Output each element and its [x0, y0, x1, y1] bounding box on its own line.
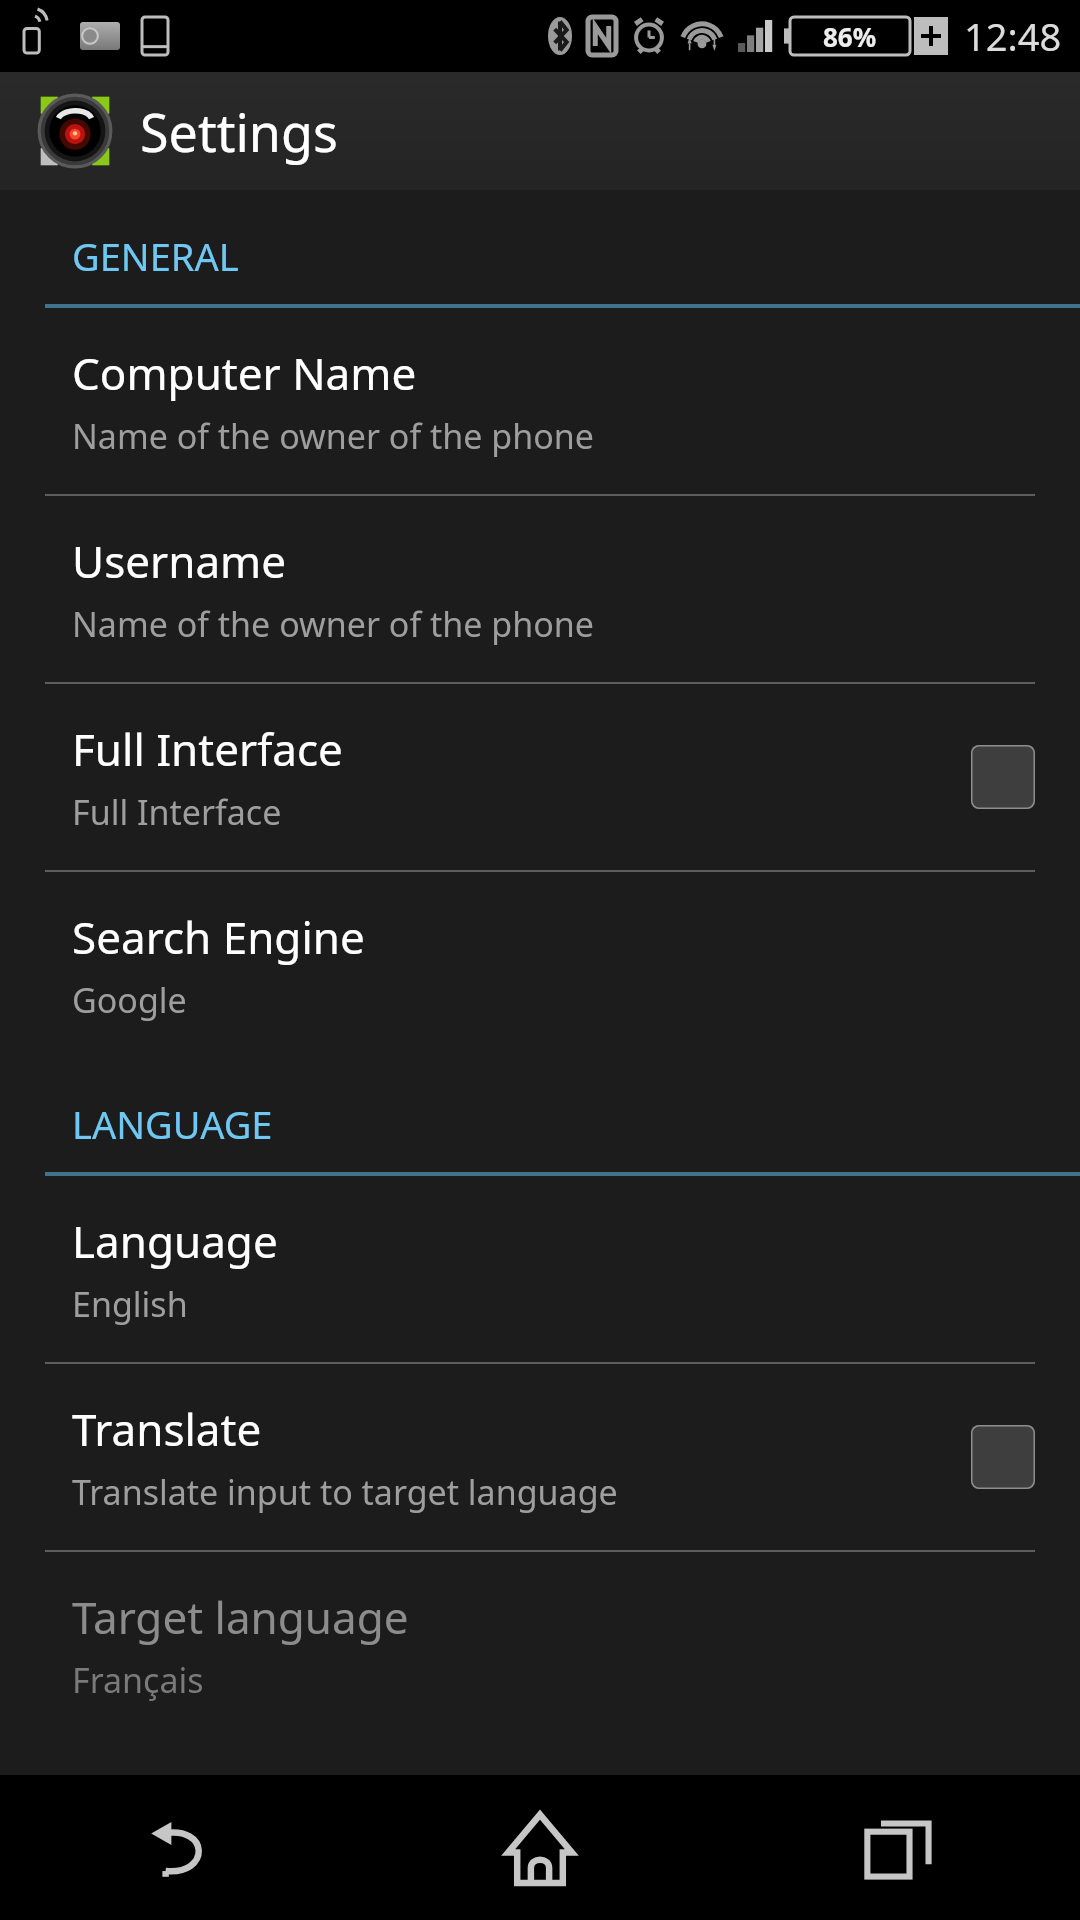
staticText: Language: [72, 1211, 278, 1271]
staticText: 86%: [823, 19, 877, 54]
button[interactable]: Search Engine: [0, 872, 1080, 1058]
button[interactable]: Back: [0, 1775, 360, 1920]
button[interactable]: Language: [0, 1176, 1080, 1364]
staticText: Full Interface: [72, 719, 343, 779]
button[interactable]: Translate: [0, 1364, 1080, 1552]
staticText: Translate: [72, 1399, 262, 1459]
staticText: Full Interface: [72, 789, 282, 835]
staticText: Search Engine: [72, 907, 365, 967]
button[interactable]: Recents: [720, 1775, 1080, 1920]
staticText: Google: [72, 977, 187, 1023]
button[interactable]: Computer Name: [0, 308, 1080, 496]
staticText: GENERAL: [72, 230, 239, 282]
staticText: Target language: [72, 1587, 409, 1647]
button[interactable]: Target language: [0, 1552, 1080, 1738]
button[interactable]: Home: [360, 1775, 720, 1920]
staticText: Name of the owner of the phone: [72, 413, 594, 459]
staticText: Translate input to target language: [72, 1469, 618, 1515]
button[interactable]: Toggle Translate: [971, 1425, 1035, 1489]
staticText: LANGUAGE: [72, 1098, 273, 1150]
staticText: Name of the owner of the phone: [72, 601, 594, 647]
staticText: Settings: [140, 96, 338, 167]
staticText: Username: [72, 531, 287, 591]
staticText: Computer Name: [72, 343, 417, 403]
button[interactable]: Username: [0, 496, 1080, 684]
staticText: 12:48: [964, 10, 1062, 62]
button[interactable]: Full Interface: [0, 684, 1080, 872]
button[interactable]: Toggle Full Interface: [971, 745, 1035, 809]
staticText: English: [72, 1281, 188, 1327]
staticText: Français: [72, 1657, 204, 1703]
